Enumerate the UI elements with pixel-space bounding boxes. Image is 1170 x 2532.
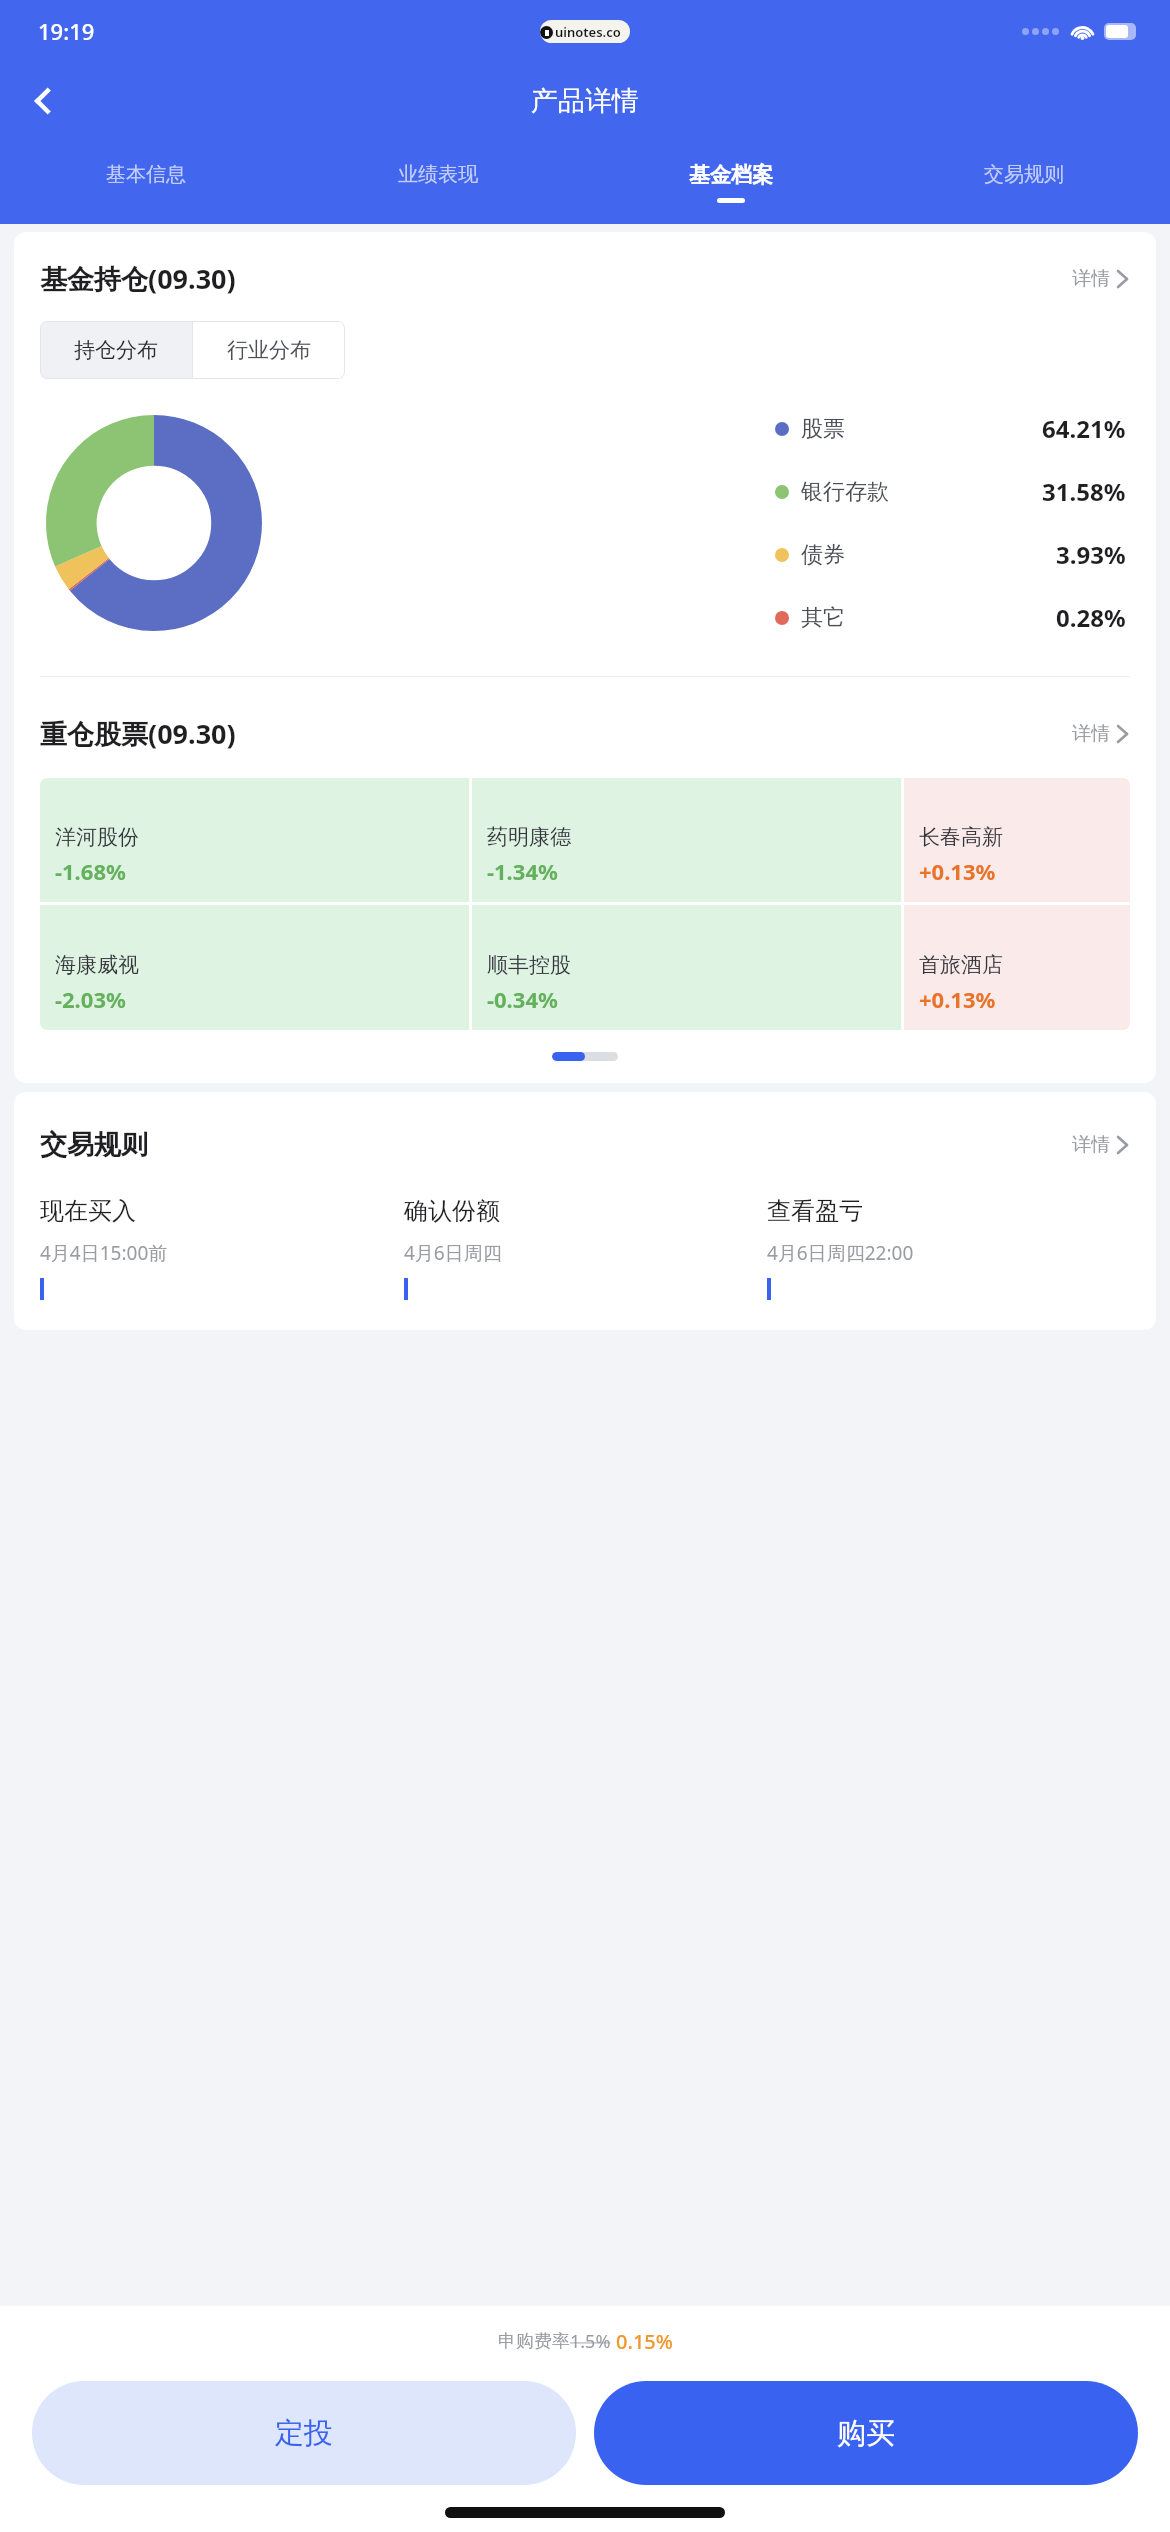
button[interactable]: 详情 [1070, 263, 1130, 295]
button[interactable]: 详情 [1070, 1129, 1130, 1161]
button[interactable]: 行业分布 [193, 321, 345, 379]
staticText: 19:19 [38, 16, 95, 46]
staticText: 交易规则 [40, 1128, 148, 1162]
staticText: 购买 [837, 2415, 895, 2452]
staticText: +0.13% [919, 984, 996, 1014]
staticText: 长春高新 [919, 824, 1003, 850]
staticText: 1.5% [570, 2329, 611, 2354]
staticText: 业绩表现 [398, 162, 478, 187]
staticText: 股票 [801, 415, 845, 443]
staticText: 基本信息 [106, 162, 186, 187]
button[interactable]: 海康威视 [40, 905, 469, 1030]
staticText: 定投 [275, 2415, 333, 2452]
staticText: 0.15% [616, 2328, 673, 2355]
button[interactable]: 购买 [594, 2381, 1138, 2485]
button[interactable]: 洋河股份 [40, 778, 469, 902]
staticText: 持仓分布 [74, 337, 158, 363]
staticText: +0.13% [919, 856, 996, 886]
staticText: 基金持仓(09.30) [40, 260, 236, 297]
staticText: 4月6日周四22:00 [767, 1240, 914, 1266]
staticText: 海康威视 [55, 952, 139, 978]
staticText: -2.03% [55, 984, 126, 1014]
staticText: -0.34% [487, 984, 558, 1014]
button[interactable]: 首旅酒店 [904, 905, 1130, 1030]
button[interactable]: 药明康德 [472, 778, 901, 902]
staticText: uinotes.com [555, 23, 630, 41]
staticText: -1.68% [55, 856, 126, 886]
button[interactable]: Back [20, 78, 66, 124]
button[interactable]: 顺丰控股 [472, 905, 901, 1030]
staticText: 重仓股票(09.30) [40, 715, 236, 752]
button[interactable]: 业绩表现 [292, 140, 584, 224]
staticText: 64.21% [1042, 412, 1126, 445]
button[interactable]: 详情 [1070, 718, 1130, 750]
staticText: 详情 [1072, 267, 1110, 291]
button[interactable]: 交易规则 [877, 140, 1170, 224]
button[interactable]: 持仓分布 [40, 321, 192, 379]
staticText: 交易规则 [984, 162, 1064, 187]
staticText: 确认份额 [404, 1196, 500, 1226]
staticText: 首旅酒店 [919, 952, 1003, 978]
staticText: 4月6日周四 [404, 1240, 502, 1266]
button[interactable]: 定投 [32, 2381, 576, 2485]
staticText: 现在买入 [40, 1196, 136, 1226]
staticText: 详情 [1072, 722, 1110, 746]
staticText: 基金档案 [689, 162, 773, 188]
button[interactable]: 基本信息 [0, 140, 292, 224]
staticText: 其它 [801, 604, 845, 632]
staticText: 洋河股份 [55, 824, 139, 850]
staticText: 行业分布 [227, 337, 311, 363]
staticText: 顺丰控股 [487, 952, 571, 978]
staticText: 31.58% [1042, 475, 1126, 508]
staticText: 4月4日15:00前 [40, 1240, 168, 1266]
button[interactable]: 基金档案 [584, 140, 877, 224]
staticText: 银行存款 [801, 478, 889, 506]
button[interactable]: 长春高新 [904, 778, 1130, 902]
staticText: 3.93% [1056, 538, 1126, 571]
staticText: 药明康德 [487, 824, 571, 850]
staticText: 详情 [1072, 1133, 1110, 1157]
staticText: 债券 [801, 541, 845, 569]
staticText: 产品详情 [531, 84, 639, 118]
staticText: 查看盈亏 [767, 1196, 863, 1226]
staticText: 申购费率 [498, 2330, 570, 2353]
staticText: -1.34% [487, 856, 558, 886]
staticText: 0.28% [1056, 601, 1126, 634]
